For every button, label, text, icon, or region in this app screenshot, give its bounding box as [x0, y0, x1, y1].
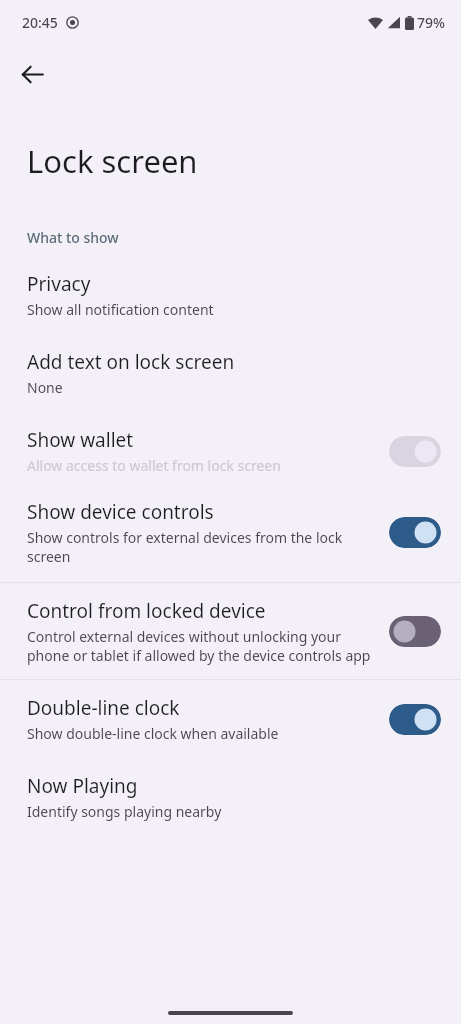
button[interactable]: Toggle setting	[389, 517, 441, 548]
button[interactable]: Toggle setting	[389, 616, 441, 647]
staticText: Double-line clock	[27, 695, 180, 721]
staticText: 79%	[417, 13, 445, 32]
button[interactable]: Add text on lock screen	[0, 349, 461, 397]
button[interactable]: Show wallet	[0, 427, 461, 475]
button[interactable]: Privacy	[0, 271, 461, 319]
staticText: Control from locked device	[27, 598, 266, 624]
staticText: Show device controls	[27, 499, 214, 525]
button[interactable]: Show device controls	[0, 499, 461, 566]
button[interactable]: Toggle setting	[389, 704, 441, 735]
staticText: Show controls for external devices from …	[27, 528, 375, 566]
button[interactable]: Toggle setting	[389, 436, 441, 467]
staticText: Show double-line clock when available	[27, 724, 279, 743]
staticText: Add text on lock screen	[27, 349, 235, 375]
staticText: 20:45	[22, 13, 58, 32]
staticText: Show wallet	[27, 427, 134, 453]
staticText: None	[27, 378, 63, 397]
button[interactable]: Double-line clock	[0, 695, 461, 743]
staticText: Privacy	[27, 271, 91, 297]
staticText: Now Playing	[27, 773, 138, 799]
staticText: Allow access to wallet from lock screen	[27, 456, 281, 475]
staticText: Lock screen	[27, 140, 198, 182]
staticText: What to show	[27, 228, 119, 247]
button[interactable]: Now Playing	[0, 773, 461, 821]
button[interactable]: Control from locked device	[0, 598, 461, 665]
staticText: Show all notification content	[27, 300, 214, 319]
staticText: Identify songs playing nearby	[27, 802, 222, 821]
button[interactable]: Back	[10, 52, 54, 96]
staticText: Control external devices without unlocki…	[27, 627, 375, 665]
